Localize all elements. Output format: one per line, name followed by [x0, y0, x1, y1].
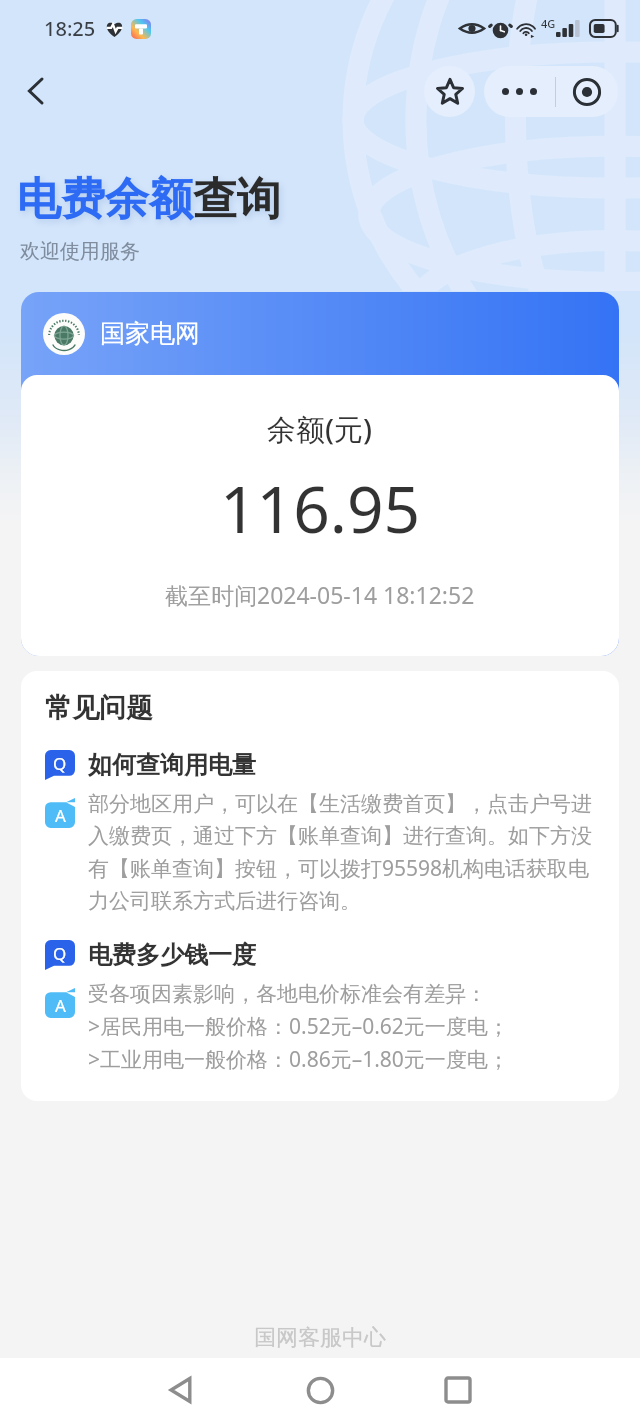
button[interactable]: Recents: [428, 1360, 488, 1420]
staticText: Q: [53, 942, 67, 965]
staticText: Q: [53, 752, 67, 775]
staticText: 截至时间2024-05-14 18:12:52: [165, 579, 475, 610]
staticText: 18:25: [44, 15, 96, 42]
staticText: 电费多少钱一度: [88, 940, 256, 970]
staticText: A: [55, 994, 66, 1017]
button[interactable]: Back: [152, 1360, 212, 1420]
staticText: A: [55, 804, 66, 827]
staticText: 欢迎使用服务: [20, 239, 140, 264]
staticText: 国家电网: [100, 318, 200, 349]
staticText: 116.95: [220, 465, 421, 552]
button[interactable]: Back: [8, 63, 64, 119]
staticText: 电费余额: [17, 172, 193, 227]
staticText: 查询: [193, 172, 281, 227]
staticText: 受各项因素影响，各地电价标准会有差异： >居民用电一般价格：0.52元–0.62…: [88, 981, 509, 1073]
staticText: 部分地区用户，可以在【生活缴费首页】，点击户号进入缴费页，通过下方【账单查询】进…: [88, 791, 595, 914]
button[interactable]: Favorite: [424, 66, 475, 117]
staticText: 余额(元): [267, 409, 373, 449]
staticText: 4G: [541, 16, 556, 31]
button[interactable]: Home: [290, 1360, 350, 1420]
staticText: 常见问题: [45, 691, 153, 725]
button[interactable]: Menu: [484, 66, 618, 117]
staticText: 国网客服中心: [0, 1324, 640, 1352]
staticText: 如何查询用电量: [88, 750, 256, 780]
